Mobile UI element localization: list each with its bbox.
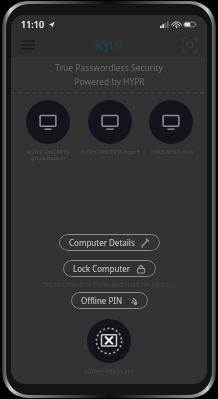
staticText: Offline PIN — [81, 295, 123, 306]
button[interactable]: Computer Details — [59, 234, 160, 251]
button[interactable]: CHRIS-8700-chris — [141, 100, 201, 155]
button[interactable]: Unlock coffee computer — [87, 319, 131, 363]
staticText: True Passwordless Security — [55, 62, 163, 74]
button[interactable]: AUTHCONCEPTS- grace.hopper — [17, 100, 79, 162]
staticText: Computer Details — [69, 237, 135, 248]
staticText: AUTHCONCEPTS- grace.hopper — [26, 148, 71, 162]
staticText: coffee <default> — [84, 367, 134, 376]
staticText: 11:10 — [21, 18, 45, 30]
button[interactable]: Lock Computer — [63, 260, 156, 277]
staticText: Powered by HYPR — [74, 76, 145, 88]
button[interactable]: Menu — [17, 34, 39, 56]
button[interactable]: Scan QR code — [179, 34, 201, 56]
staticText: CHRIS-8700-chris — [149, 148, 194, 155]
button[interactable]: Offline PIN — [71, 292, 148, 309]
staticText: Lock Computer — [73, 263, 131, 274]
staticText: AUTHCONCEPTS-hypr3 — [80, 148, 140, 155]
button[interactable]: AUTHCONCEPTS-hypr3 — [79, 100, 141, 155]
staticText: Tap to Unlock or Press and Hold for Opti… — [42, 280, 176, 289]
